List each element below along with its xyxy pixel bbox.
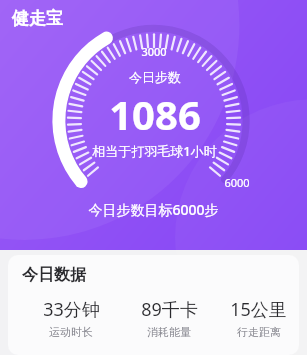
staticText: 89千卡 — [141, 297, 198, 322]
staticText: 今日步数 — [129, 69, 181, 85]
staticText: 相当于打羽毛球1小时 — [92, 142, 217, 160]
button[interactable]: 健走宝 — [12, 8, 63, 29]
button[interactable]: 89千卡 — [120, 297, 218, 339]
staticText: 6000 — [224, 175, 250, 190]
button[interactable]: 15公里 — [218, 297, 299, 339]
staticText: 今日步数目标6000步 — [88, 200, 219, 219]
staticText: 运动时长 — [49, 325, 93, 339]
button[interactable]: 今日数据 — [8, 255, 299, 355]
staticText: 15公里 — [230, 297, 287, 322]
staticText: 消耗能量 — [147, 325, 191, 339]
staticText: 1086 — [109, 87, 201, 141]
staticText: 1 — [74, 176, 80, 190]
staticText: 今日数据 — [22, 265, 86, 285]
staticText: 33分钟 — [43, 297, 100, 322]
staticText: 3000 — [141, 44, 167, 59]
button[interactable]: 33分钟 — [22, 297, 120, 339]
staticText: 行走距离 — [237, 325, 281, 339]
